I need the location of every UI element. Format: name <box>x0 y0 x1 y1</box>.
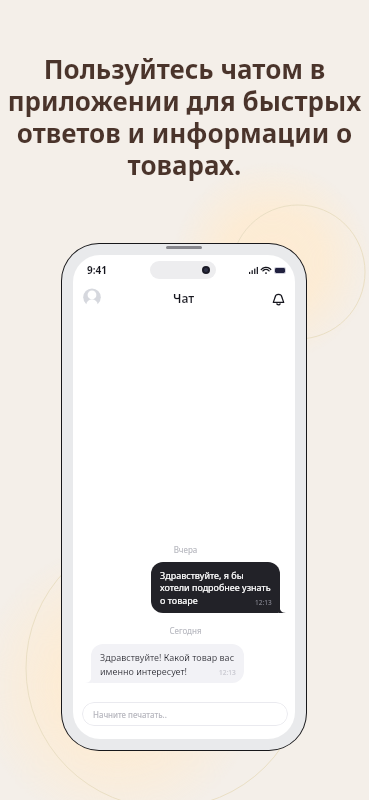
button[interactable]: Notifications <box>268 288 288 308</box>
staticText: Начните печатать.. <box>93 709 167 720</box>
staticText: Здравствуйте, я бы хотели подробнее узна… <box>160 569 271 607</box>
button[interactable]: Здравствуйте! Какой товар вас именно инт… <box>100 651 236 677</box>
button[interactable]: Profile <box>81 287 103 309</box>
staticText: Пользуйтесь чатом в приложении для быстр… <box>4 51 365 183</box>
staticText: 12:13 <box>219 668 236 677</box>
staticText: Сегодня <box>85 625 286 636</box>
button[interactable]: Начните печатать.. <box>82 702 288 726</box>
button[interactable]: Здравствуйте, я бы хотели подробнее узна… <box>160 569 272 607</box>
staticText: 12:13 <box>255 598 272 607</box>
staticText: Чат <box>173 290 195 306</box>
staticText: Вчера <box>85 544 286 555</box>
staticText: Здравствуйте! Какой товар вас именно инт… <box>100 651 235 677</box>
staticText: 9:41 <box>87 263 107 277</box>
